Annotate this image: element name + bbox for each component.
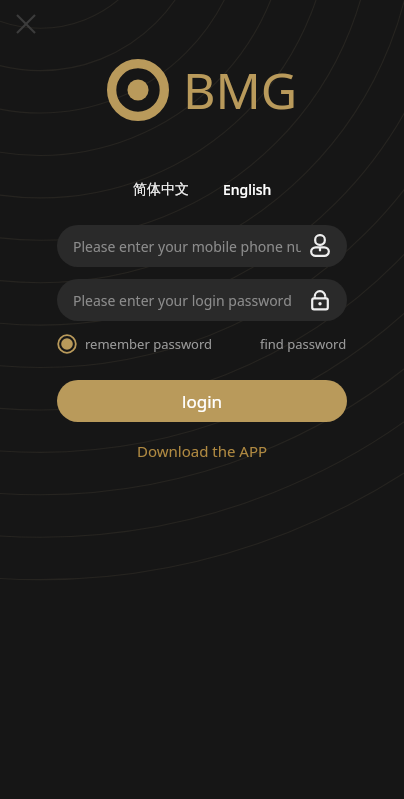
staticText: remember password [85, 335, 213, 353]
button[interactable]: Please enter your login password [57, 279, 347, 321]
button[interactable]: find password [260, 335, 347, 353]
staticText: 简体中文 [133, 181, 189, 199]
staticText: login [182, 390, 223, 413]
staticText: BMG [183, 56, 298, 124]
staticText: English [223, 180, 272, 199]
staticText: Please enter your mobile phone number [73, 237, 301, 256]
button[interactable]: remember password [57, 334, 213, 354]
button[interactable]: Close [10, 8, 42, 40]
button[interactable]: Please enter your mobile phone number [57, 225, 347, 267]
other: Account [307, 233, 333, 259]
button[interactable]: Download the APP [129, 438, 276, 464]
button[interactable]: 简体中文 [127, 177, 195, 203]
button[interactable]: login [57, 380, 347, 422]
button[interactable]: English [217, 176, 278, 203]
staticText: Download the APP [137, 441, 268, 461]
other: Password [307, 287, 333, 313]
staticText: Please enter your login password [73, 291, 301, 310]
staticText: find password [260, 335, 347, 353]
